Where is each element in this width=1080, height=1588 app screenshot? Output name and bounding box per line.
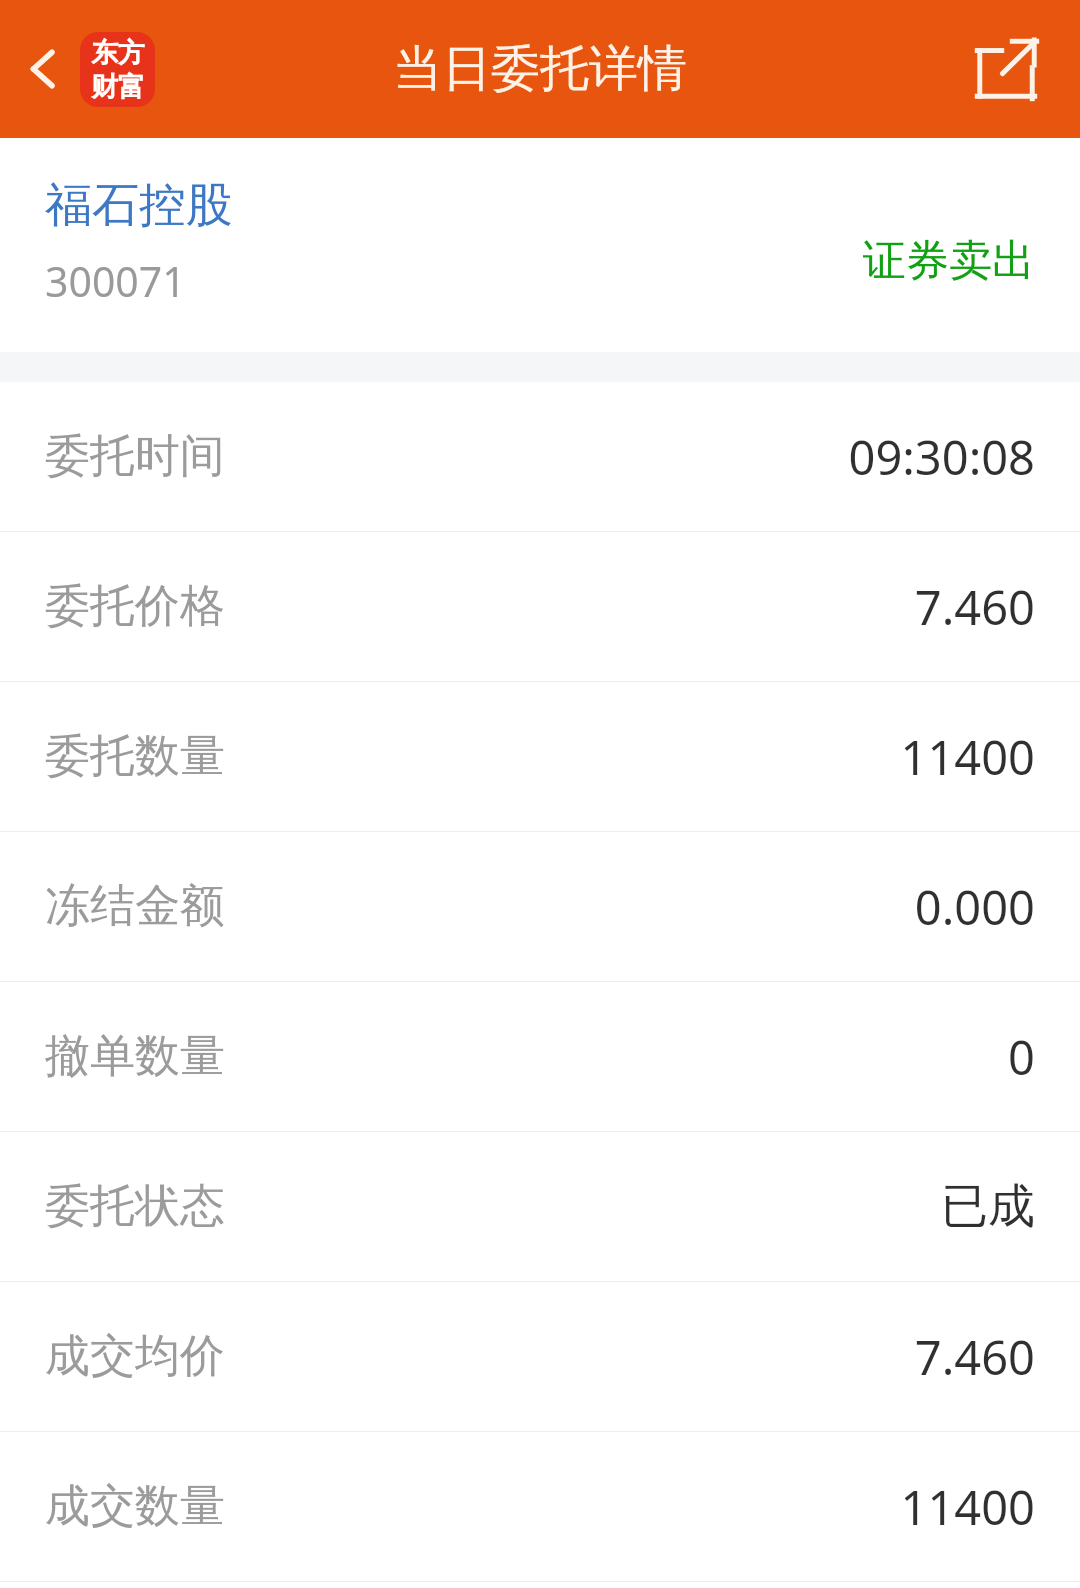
staticText: 09:30:08 — [848, 425, 1035, 489]
staticText: 已成 — [941, 1177, 1035, 1236]
staticText: 冻结金额 — [45, 878, 225, 935]
staticText: 成交均价 — [45, 1328, 225, 1385]
button[interactable]: 福石控股 — [0, 138, 1080, 352]
staticText: 0 — [1008, 1025, 1035, 1089]
staticText: 委托状态 — [45, 1178, 225, 1235]
staticText: 当日委托详情 — [393, 38, 687, 100]
staticText: 7.460 — [914, 1325, 1035, 1389]
staticText: 0.000 — [914, 875, 1035, 939]
staticText: 成交数量 — [45, 1478, 225, 1535]
button[interactable]: Share — [964, 26, 1050, 112]
button[interactable]: 冻结金额 — [0, 832, 1080, 982]
button[interactable]: 委托数量 — [0, 682, 1080, 832]
staticText: 委托数量 — [45, 728, 225, 785]
button[interactable]: 成交数量 — [0, 1432, 1080, 1582]
button[interactable]: Back — [4, 29, 84, 109]
staticText: 财富 — [91, 70, 145, 104]
staticText: 11400 — [900, 1475, 1035, 1539]
staticText: 委托时间 — [45, 428, 225, 485]
button[interactable]: 成交均价 — [0, 1282, 1080, 1432]
staticText: 委托价格 — [45, 578, 225, 635]
button[interactable]: 委托状态 — [0, 1132, 1080, 1282]
staticText: 300071 — [45, 253, 186, 309]
staticText: 福石控股 — [45, 176, 233, 235]
staticText: 东方 — [91, 36, 145, 70]
button[interactable]: 委托价格 — [0, 532, 1080, 682]
button[interactable]: 委托时间 — [0, 382, 1080, 532]
staticText: 撤单数量 — [45, 1028, 225, 1085]
button[interactable]: 撤单数量 — [0, 982, 1080, 1132]
button[interactable]: East Money logo — [80, 32, 155, 107]
staticText: 7.460 — [914, 575, 1035, 639]
staticText: 证券卖出 — [863, 234, 1035, 288]
staticText: 11400 — [900, 725, 1035, 789]
